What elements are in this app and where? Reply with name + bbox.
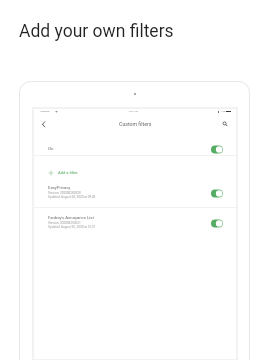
button[interactable]: Fanboy's Annoyance List [33, 210, 237, 238]
staticText: Version: 202008280928 [48, 191, 81, 195]
staticText: On [48, 146, 54, 151]
staticText: Add your own filters [19, 21, 174, 42]
staticText: 100% [221, 110, 228, 113]
staticText: Custom filters [119, 121, 152, 127]
button[interactable]: On [33, 133, 237, 156]
staticText: Updated: August 28, 2020 at 09:28 [48, 195, 96, 199]
staticText: Updated: August 25, 2020 at 16:21 [48, 225, 96, 229]
staticText: Adguard [40, 110, 50, 113]
staticText: Version: 202008250621 [48, 221, 81, 225]
button[interactable]: Search [219, 118, 231, 130]
staticText: Add a filter [58, 170, 78, 175]
button[interactable]: Back [37, 118, 49, 130]
staticText: Fanboy's Annoyance List [48, 215, 94, 220]
button[interactable]: Add a filter [33, 157, 237, 180]
staticText: EasyPrivacy [48, 185, 71, 190]
staticText: 9:41 AM [129, 110, 139, 113]
button[interactable]: EasyPrivacy [33, 180, 237, 208]
